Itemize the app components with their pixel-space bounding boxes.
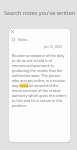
- staticText: Jan 12, 2023: [9, 45, 62, 49]
- staticText: Search notes you've written: [4, 9, 76, 16]
- button[interactable]: Dismiss result: [9, 29, 16, 35]
- staticText: Notes: [18, 37, 28, 42]
- button[interactable]: Dismiss result: [9, 29, 70, 142]
- staticText: Routine acceptance of the duty to do as …: [12, 53, 67, 108]
